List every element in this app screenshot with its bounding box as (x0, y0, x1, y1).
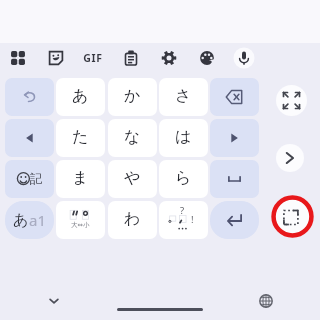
button[interactable]: か (108, 78, 157, 116)
staticText: た (72, 127, 89, 147)
staticText: ら (175, 168, 192, 188)
button[interactable]: Voice input (228, 42, 260, 74)
button[interactable]: ら (159, 160, 208, 198)
button[interactable]: Hide keyboard (40, 287, 68, 315)
button[interactable]: Themes (191, 42, 223, 74)
button[interactable]: Apps (2, 42, 34, 74)
staticText: a1 (29, 210, 46, 230)
button[interactable]: た (56, 119, 105, 157)
staticText: 大⇔小 (71, 221, 90, 229)
button[interactable]: Dakuten and small kana (56, 201, 105, 239)
staticText: GIF (83, 51, 103, 65)
button[interactable]: Emoji and symbols (5, 160, 54, 198)
button[interactable]: ま (56, 160, 105, 198)
button[interactable]: あ (56, 78, 105, 116)
staticText: か (124, 86, 141, 106)
button[interactable]: Settings (153, 42, 185, 74)
button[interactable]: Move cursor right (210, 119, 259, 157)
staticText: ま (72, 168, 89, 188)
button[interactable]: Clipboard (115, 42, 147, 74)
button[interactable]: わ (108, 201, 157, 239)
staticText: 記 (30, 171, 43, 187)
staticText: あ (72, 86, 89, 106)
button[interactable]: な (108, 119, 157, 157)
staticText: ! (191, 213, 194, 226)
button[interactable]: Switch input mode (5, 201, 54, 239)
staticText: あ (13, 211, 29, 230)
button[interactable]: Undo (5, 78, 54, 116)
button[interactable]: さ (159, 78, 208, 116)
button[interactable]: や (108, 160, 157, 198)
button[interactable]: GIF (77, 42, 109, 74)
button[interactable]: Space (210, 160, 259, 198)
button[interactable]: Next (276, 144, 304, 172)
button[interactable]: Move cursor left (5, 119, 54, 157)
button[interactable]: Select text (271, 195, 314, 238)
staticText: わ (124, 209, 141, 229)
button[interactable]: Resize keyboard (276, 85, 307, 116)
staticText: は (175, 127, 192, 147)
button[interactable]: Punctuation (159, 201, 208, 239)
button[interactable]: Change language (252, 287, 280, 315)
button[interactable]: Enter (210, 201, 259, 239)
staticText: ? (180, 204, 185, 217)
button[interactable]: Backspace (210, 78, 259, 116)
staticText: や (124, 168, 141, 188)
staticText: な (124, 127, 141, 147)
button[interactable]: は (159, 119, 208, 157)
staticText: さ (175, 86, 192, 106)
button[interactable]: Stickers (40, 42, 72, 74)
